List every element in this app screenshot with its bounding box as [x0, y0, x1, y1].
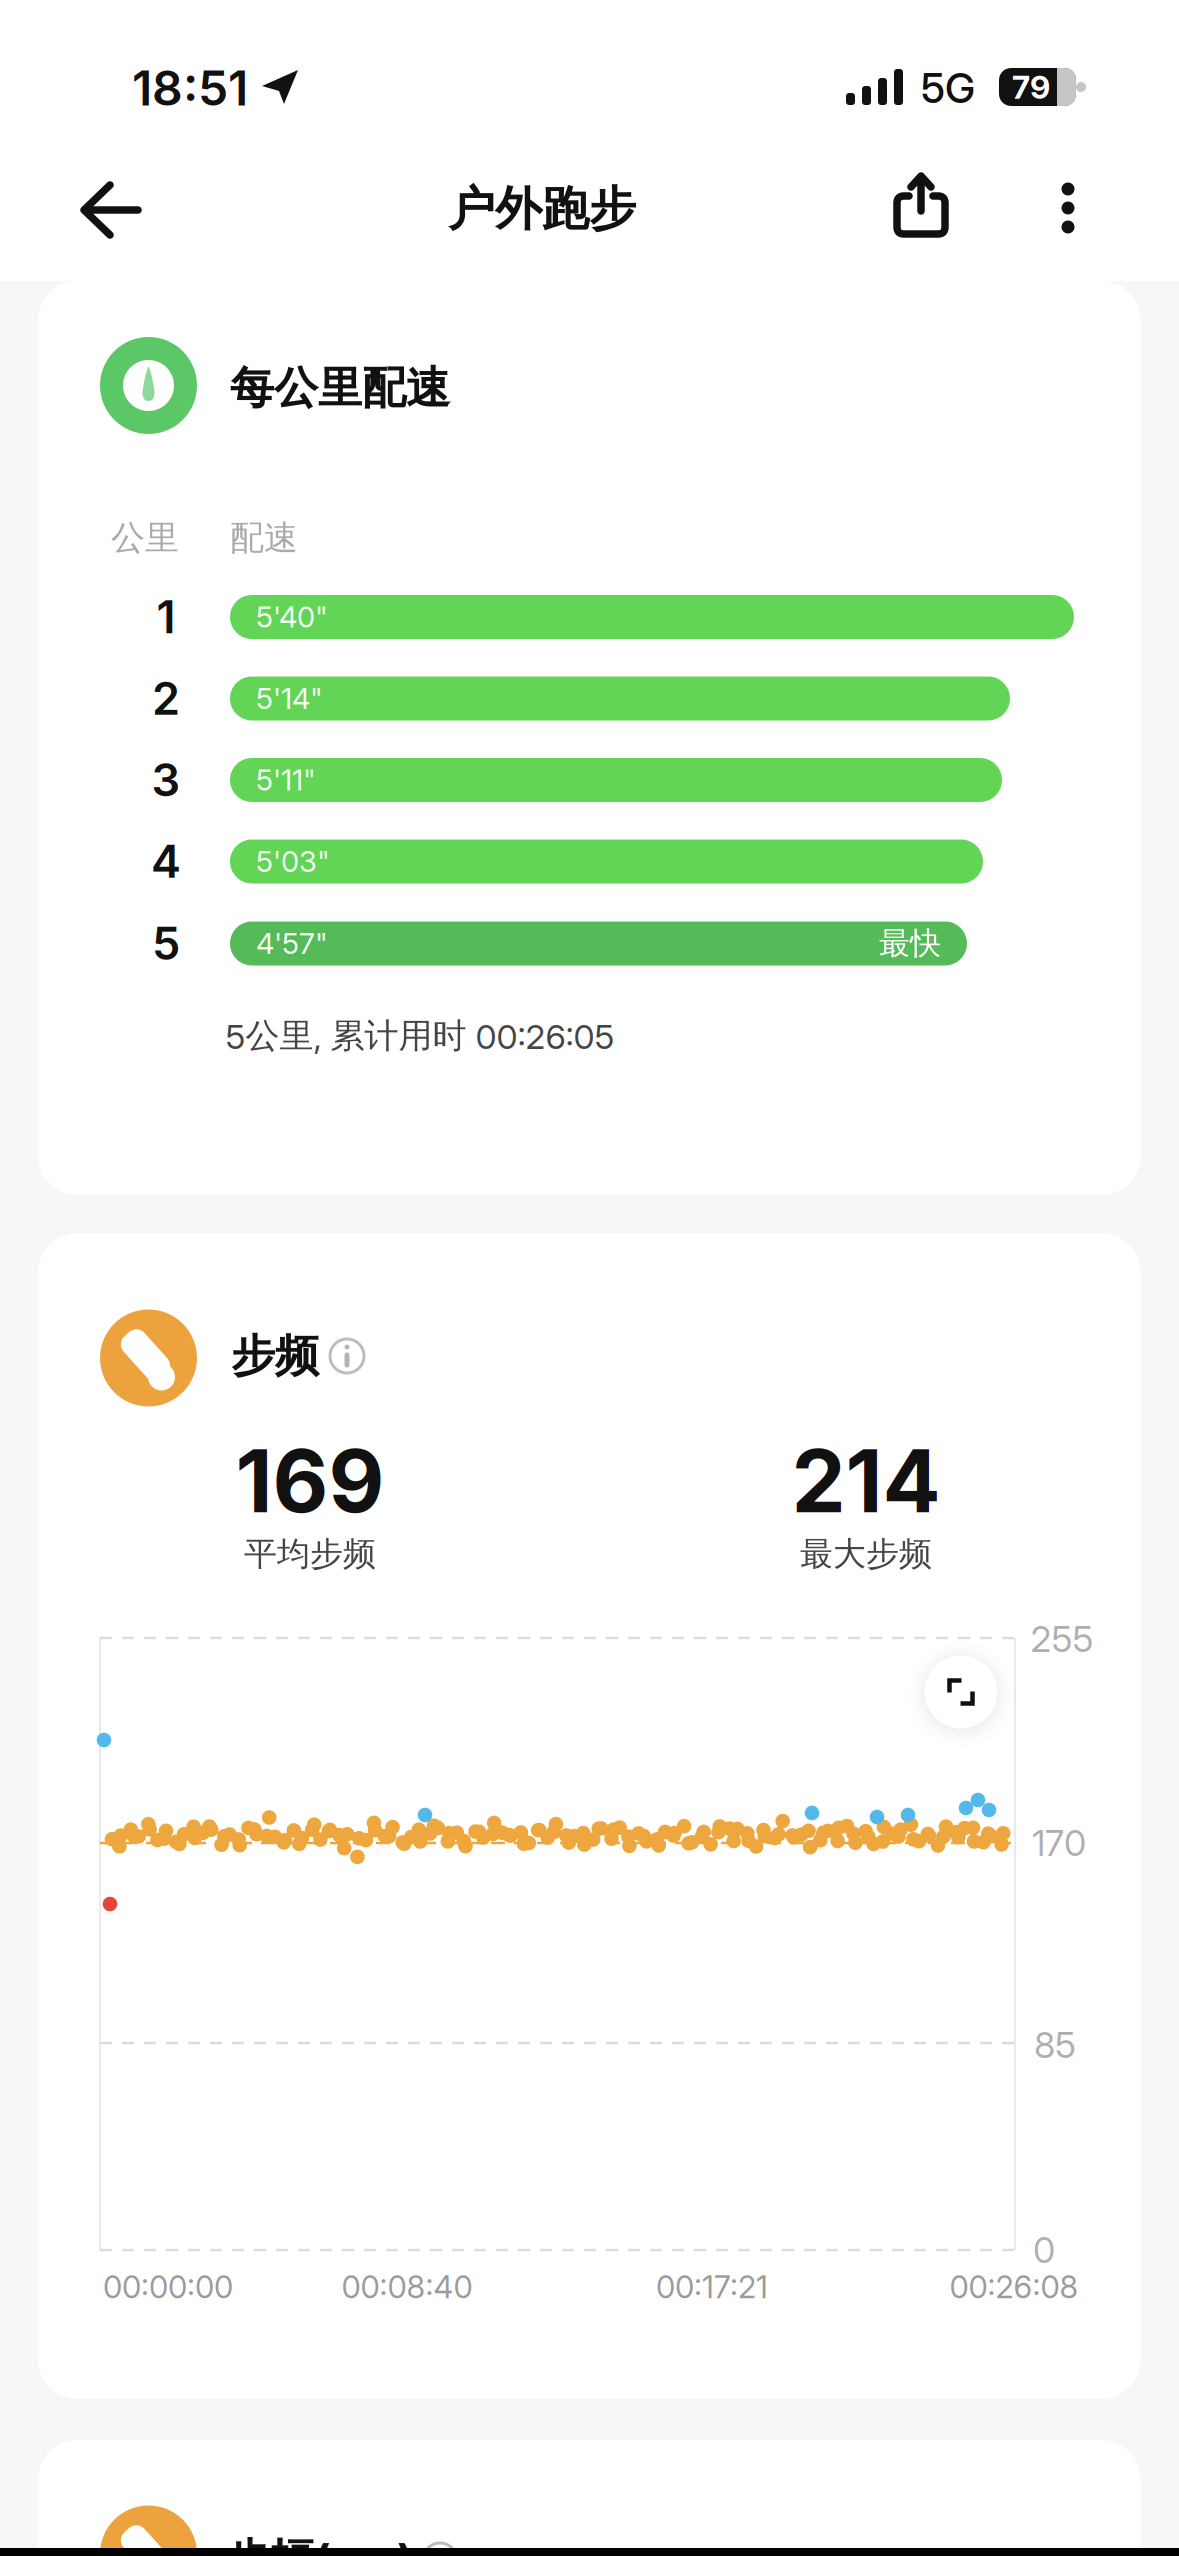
staticText: 步幅(cm)	[226, 2532, 414, 2556]
staticText: 1	[156, 590, 175, 644]
button[interactable]: Share	[0, 0, 1179, 2556]
staticText: 2	[152, 671, 180, 726]
staticText: 5G	[921, 63, 975, 113]
button[interactable]: Back	[0, 0, 1179, 2556]
staticText: 00:17:21	[656, 2268, 768, 2306]
staticText: 79	[1012, 68, 1050, 106]
button[interactable]: Expand chart	[0, 0, 1179, 2556]
staticText: 4	[151, 834, 181, 889]
staticText: 每公里配速	[230, 360, 450, 416]
staticText: 00:26:08	[949, 2268, 1078, 2306]
staticText: 5'40"	[256, 599, 328, 635]
staticText: 5公里, 累计用时 00:26:05	[225, 1015, 614, 1057]
staticText: 00:08:40	[341, 2268, 472, 2306]
staticText: 85	[1034, 2023, 1076, 2067]
staticText: 户外跑步	[448, 179, 636, 239]
staticText: 5	[152, 916, 180, 971]
staticText: 3	[151, 753, 180, 807]
staticText: 公里	[111, 517, 179, 559]
staticText: 255	[1030, 1617, 1093, 1661]
button[interactable]: More	[0, 0, 1179, 2556]
staticText: 18:51	[132, 59, 248, 117]
staticText: 169	[235, 1429, 384, 1533]
staticText: 步频	[231, 1328, 319, 1384]
staticText: 5'11"	[256, 762, 316, 798]
staticText: 170	[1032, 1821, 1086, 1865]
staticText: 5'03"	[256, 844, 330, 879]
staticText: 5'14"	[256, 681, 323, 716]
staticText: 平均步频	[244, 1533, 376, 1575]
staticText: 配速	[230, 517, 298, 559]
staticText: 4'57"	[256, 926, 328, 961]
staticText: 最快	[879, 924, 941, 963]
staticText: 00:00:00	[103, 2268, 233, 2306]
staticText: 0	[1033, 2228, 1055, 2272]
staticText: 214	[791, 1429, 940, 1533]
staticText: 最大步频	[800, 1533, 932, 1575]
